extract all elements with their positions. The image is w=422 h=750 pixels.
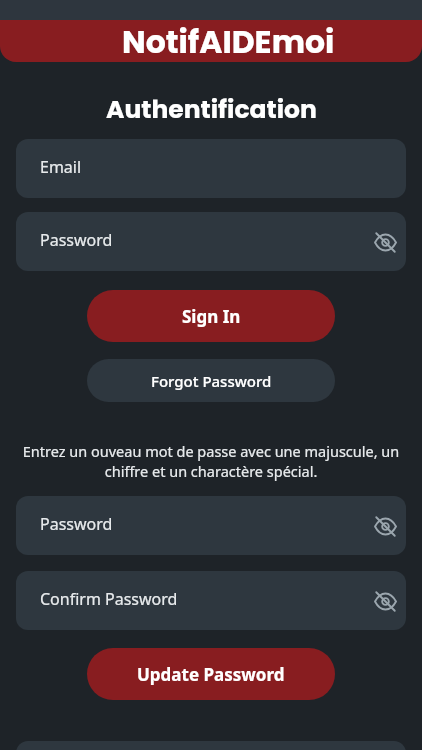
staticText: Authentification [106, 92, 317, 127]
staticText: Sign In [182, 305, 241, 328]
staticText: Update Password [137, 663, 285, 686]
staticText: Entrez un ouveau mot de passe avec une m… [18, 441, 404, 482]
staticText: Password [40, 513, 113, 535]
staticText: NotifAIDEmoi [122, 20, 335, 62]
button[interactable]: Sign In [87, 290, 335, 342]
button[interactable]: Password [16, 212, 406, 271]
staticText: Confirm Password [40, 588, 178, 610]
button[interactable]: Forgot Password [87, 359, 335, 402]
staticText: Password [40, 229, 113, 251]
button[interactable]: Show password [370, 511, 400, 541]
staticText: Forgot Password [151, 371, 272, 391]
button[interactable]: NotifAIDEmoi [0, 20, 422, 62]
button[interactable]: Confirm Password [16, 571, 406, 630]
button[interactable]: Update Password [87, 648, 335, 700]
button[interactable]: Email [16, 139, 406, 198]
button[interactable]: Show password [370, 586, 400, 616]
button[interactable]: Show password [370, 227, 400, 257]
staticText: Email [40, 156, 82, 178]
button[interactable]: Password [16, 496, 406, 555]
